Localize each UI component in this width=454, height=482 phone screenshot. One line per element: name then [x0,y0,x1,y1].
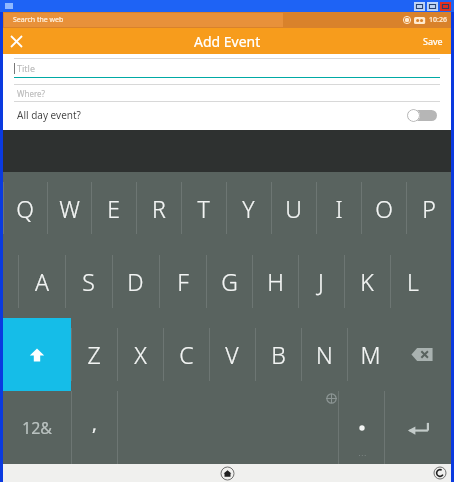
button[interactable]: J [298,244,344,318]
button[interactable]: S [65,244,112,318]
staticText: Search the web [13,15,64,25]
button[interactable]: Comma [72,391,117,464]
button[interactable]: Shift [3,318,71,391]
button[interactable]: E [91,172,136,244]
button[interactable]: Z [71,318,117,391]
staticText: Where? [17,88,46,99]
button[interactable]: X [117,318,163,391]
staticText: Save [423,35,443,47]
staticText: J [318,266,324,297]
staticText: All day event? [17,108,81,122]
staticText: 12& [22,417,53,439]
button[interactable]: Maximize [427,2,438,11]
button[interactable]: Close [3,28,29,54]
staticText: F [177,266,189,297]
staticText: Y [242,193,255,224]
staticText: C [179,339,194,370]
staticText: U [285,193,302,224]
button[interactable]: U [271,172,316,244]
staticText: Z [87,339,101,370]
button[interactable]: G [206,244,252,318]
staticText: 10:26 [429,15,447,25]
button[interactable]: T [181,172,226,244]
button[interactable]: Title [14,58,440,78]
button[interactable]: P [406,172,451,244]
button[interactable]: K [344,244,390,318]
button[interactable]: Period [339,391,384,464]
button[interactable]: Q [3,172,47,244]
staticText: K [360,266,374,297]
staticText: X [134,339,147,370]
button[interactable]: 12& [3,391,71,464]
button[interactable]: M [347,318,393,391]
button[interactable]: C [163,318,209,391]
button[interactable]: A [18,244,65,318]
button[interactable]: Backspace [393,318,451,391]
button[interactable]: Y [226,172,271,244]
staticText: G [221,266,238,297]
button[interactable]: V [209,318,255,391]
button[interactable]: Where? [14,84,440,102]
button[interactable]: L [390,244,436,318]
staticText: M [360,339,381,370]
staticText: , [92,412,97,437]
button[interactable]: Home [220,466,235,481]
staticText: R [152,193,166,224]
button[interactable]: H [252,244,298,318]
staticText: T [197,193,210,224]
staticText: I [335,193,343,224]
staticText: Add Event [194,32,261,51]
staticText: E [107,193,120,224]
staticText: W [59,193,80,224]
button[interactable]: R [136,172,181,244]
staticText: O [375,193,393,224]
button[interactable]: All day event? [3,102,451,128]
button[interactable]: D [112,244,159,318]
button[interactable]: Enter [385,391,451,464]
button[interactable]: Refresh [433,466,447,480]
button[interactable]: O [361,172,406,244]
staticText: H [267,266,284,297]
staticText: Q [16,193,34,224]
button[interactable]: Minimize [414,2,425,11]
button[interactable]: I [316,172,361,244]
button[interactable]: Close [440,2,451,11]
staticText: Title [17,62,35,74]
button[interactable]: Save [423,35,443,47]
staticText: D [127,266,144,297]
staticText: S [82,266,95,297]
button[interactable]: W [47,172,91,244]
staticText: N [316,339,333,370]
staticText: V [225,339,239,370]
button[interactable]: F [159,244,206,318]
staticText: P [422,193,436,224]
staticText: A [35,266,49,297]
staticText: ⋯ [358,451,366,460]
button[interactable]: N [301,318,347,391]
staticText: B [271,339,286,370]
staticText: L [407,266,419,297]
button[interactable]: B [255,318,301,391]
